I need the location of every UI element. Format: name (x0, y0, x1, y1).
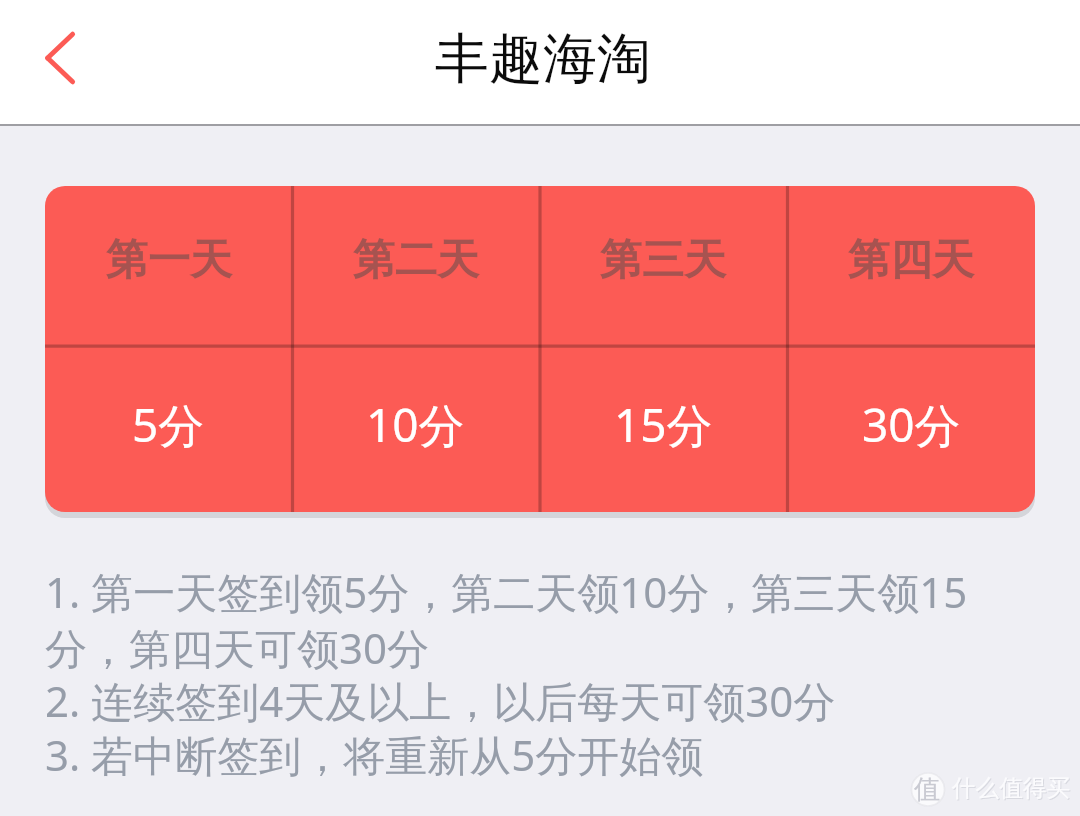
button[interactable]: 第一天 (45, 186, 292, 346)
staticText: 第二天 (353, 234, 479, 287)
button[interactable]: 30分 (787, 346, 1035, 512)
staticText: 30分 (862, 393, 961, 456)
staticText: 第一天 (106, 234, 232, 287)
button[interactable]: 5分 (45, 346, 292, 512)
button[interactable]: 15分 (539, 346, 787, 512)
button[interactable]: 第四天 (787, 186, 1035, 346)
button[interactable]: 第三天 (539, 186, 787, 346)
staticText: 15分 (614, 393, 713, 456)
staticText: 什么值得买 (953, 774, 1071, 804)
staticText: 10分 (366, 393, 465, 456)
staticText: 第四天 (848, 234, 974, 287)
staticText: 第三天 (600, 234, 726, 287)
staticText: 3. 若中断签到，将重新从5分开始领 (45, 728, 704, 784)
button[interactable]: Back (0, 0, 116, 116)
staticText: 2. 连续签到4天及以上，以后每天可领30分 (45, 674, 836, 730)
staticText: 5分 (132, 393, 205, 456)
staticText: 丰趣海淘 (435, 25, 651, 93)
staticText: 1. 第一天签到领5分，第二天领10分，第三天领15分，第四天可领30分 (45, 565, 1035, 677)
staticText: 值 (914, 773, 940, 806)
button[interactable]: 第二天 (292, 186, 539, 346)
button[interactable]: 10分 (292, 346, 539, 512)
staticText: 什么值得买 (952, 773, 1070, 803)
